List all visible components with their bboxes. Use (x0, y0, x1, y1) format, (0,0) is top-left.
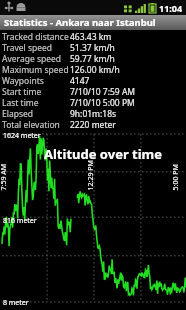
staticText: 1624 meter (3, 131, 41, 141)
staticText: 12:29 PM (85, 159, 95, 190)
staticText: Altitude over time (44, 145, 163, 163)
staticText: 51.37 km/h (70, 42, 115, 53)
staticText: Last time (2, 97, 70, 108)
staticText: 59.77 km/h (70, 53, 115, 64)
staticText: Travel speed (2, 42, 70, 53)
other: Notifications (4, 2, 28, 13)
button[interactable]: Total elevation (0, 119, 186, 130)
button[interactable]: Start time (0, 86, 186, 97)
staticText: Elapsed (2, 108, 70, 119)
button[interactable]: Average speed (0, 53, 186, 64)
staticText: Total elevation (2, 119, 70, 130)
staticText: 126.00 km/h (70, 64, 120, 75)
button[interactable]: Last time (0, 97, 186, 108)
staticText: 2220 meter (70, 119, 116, 130)
button[interactable]: Statistics - Ankara naar Istanbul (0, 15, 186, 30)
staticText: Waypoints (2, 75, 70, 86)
staticText: 8 meter (3, 298, 29, 308)
staticText: 816 meter (3, 216, 37, 226)
staticText: Maximum speed (2, 64, 70, 75)
button[interactable]: Waypoints (0, 75, 186, 86)
staticText: Tracked distance (2, 31, 70, 42)
staticText: Start time (2, 86, 70, 97)
staticText: 5:00 PM (170, 163, 180, 190)
staticText: 11:04 (159, 2, 183, 14)
staticText: 463.43 km (70, 31, 112, 42)
staticText: 4147 (70, 75, 90, 86)
button[interactable]: Elapsed (0, 108, 186, 119)
button[interactable]: Travel speed (0, 42, 186, 53)
staticText: 7/10/10 7:59 AM (70, 86, 136, 97)
button[interactable]: Tracked distance (0, 31, 186, 42)
button[interactable]: Maximum speed (0, 64, 186, 75)
staticText: Statistics - Ankara naar Istanbul (4, 16, 156, 29)
staticText: Average speed (2, 53, 70, 64)
staticText: 7/10/10 5:00 PM (70, 97, 135, 108)
staticText: 7:59 AM (0, 163, 8, 190)
staticText: 9h:01m:18s (70, 108, 117, 119)
